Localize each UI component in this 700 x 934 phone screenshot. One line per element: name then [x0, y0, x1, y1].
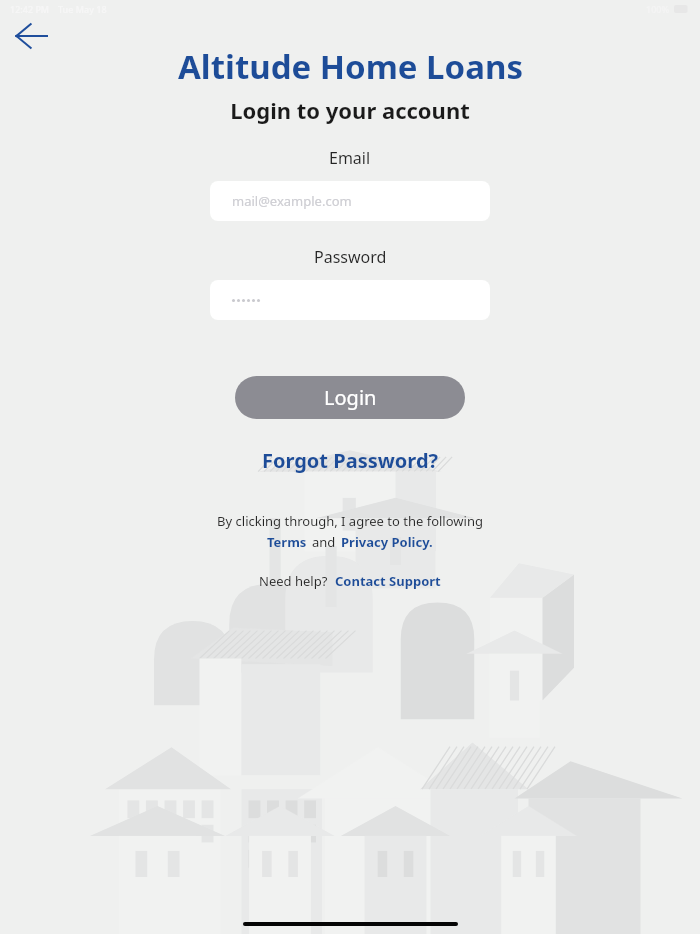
staticText: Login to your account [230, 95, 470, 125]
button[interactable]: Contact Support [335, 572, 441, 590]
button[interactable]: Login [235, 376, 465, 419]
button[interactable]: Back [6, 12, 54, 60]
staticText: By clicking through, I agree to the foll… [217, 512, 483, 530]
staticText: Altitude Home Loans [178, 44, 523, 89]
button[interactable] [210, 280, 490, 320]
staticText: and [312, 533, 336, 551]
staticText: Login [324, 384, 377, 411]
staticText: Email [329, 147, 371, 169]
staticText: Terms [267, 533, 307, 551]
button[interactable]: mail@example.com [210, 181, 490, 221]
staticText: Privacy Policy. [341, 533, 433, 551]
button[interactable]: Terms [267, 533, 307, 551]
button[interactable]: Forgot Password? [254, 443, 447, 478]
staticText: mail@example.com [232, 192, 352, 210]
staticText: Forgot Password? [262, 447, 439, 474]
staticText: Contact Support [335, 572, 441, 590]
button[interactable]: Privacy Policy. [341, 533, 433, 551]
staticText: Need help? [259, 572, 328, 590]
staticText: Password [314, 246, 387, 268]
